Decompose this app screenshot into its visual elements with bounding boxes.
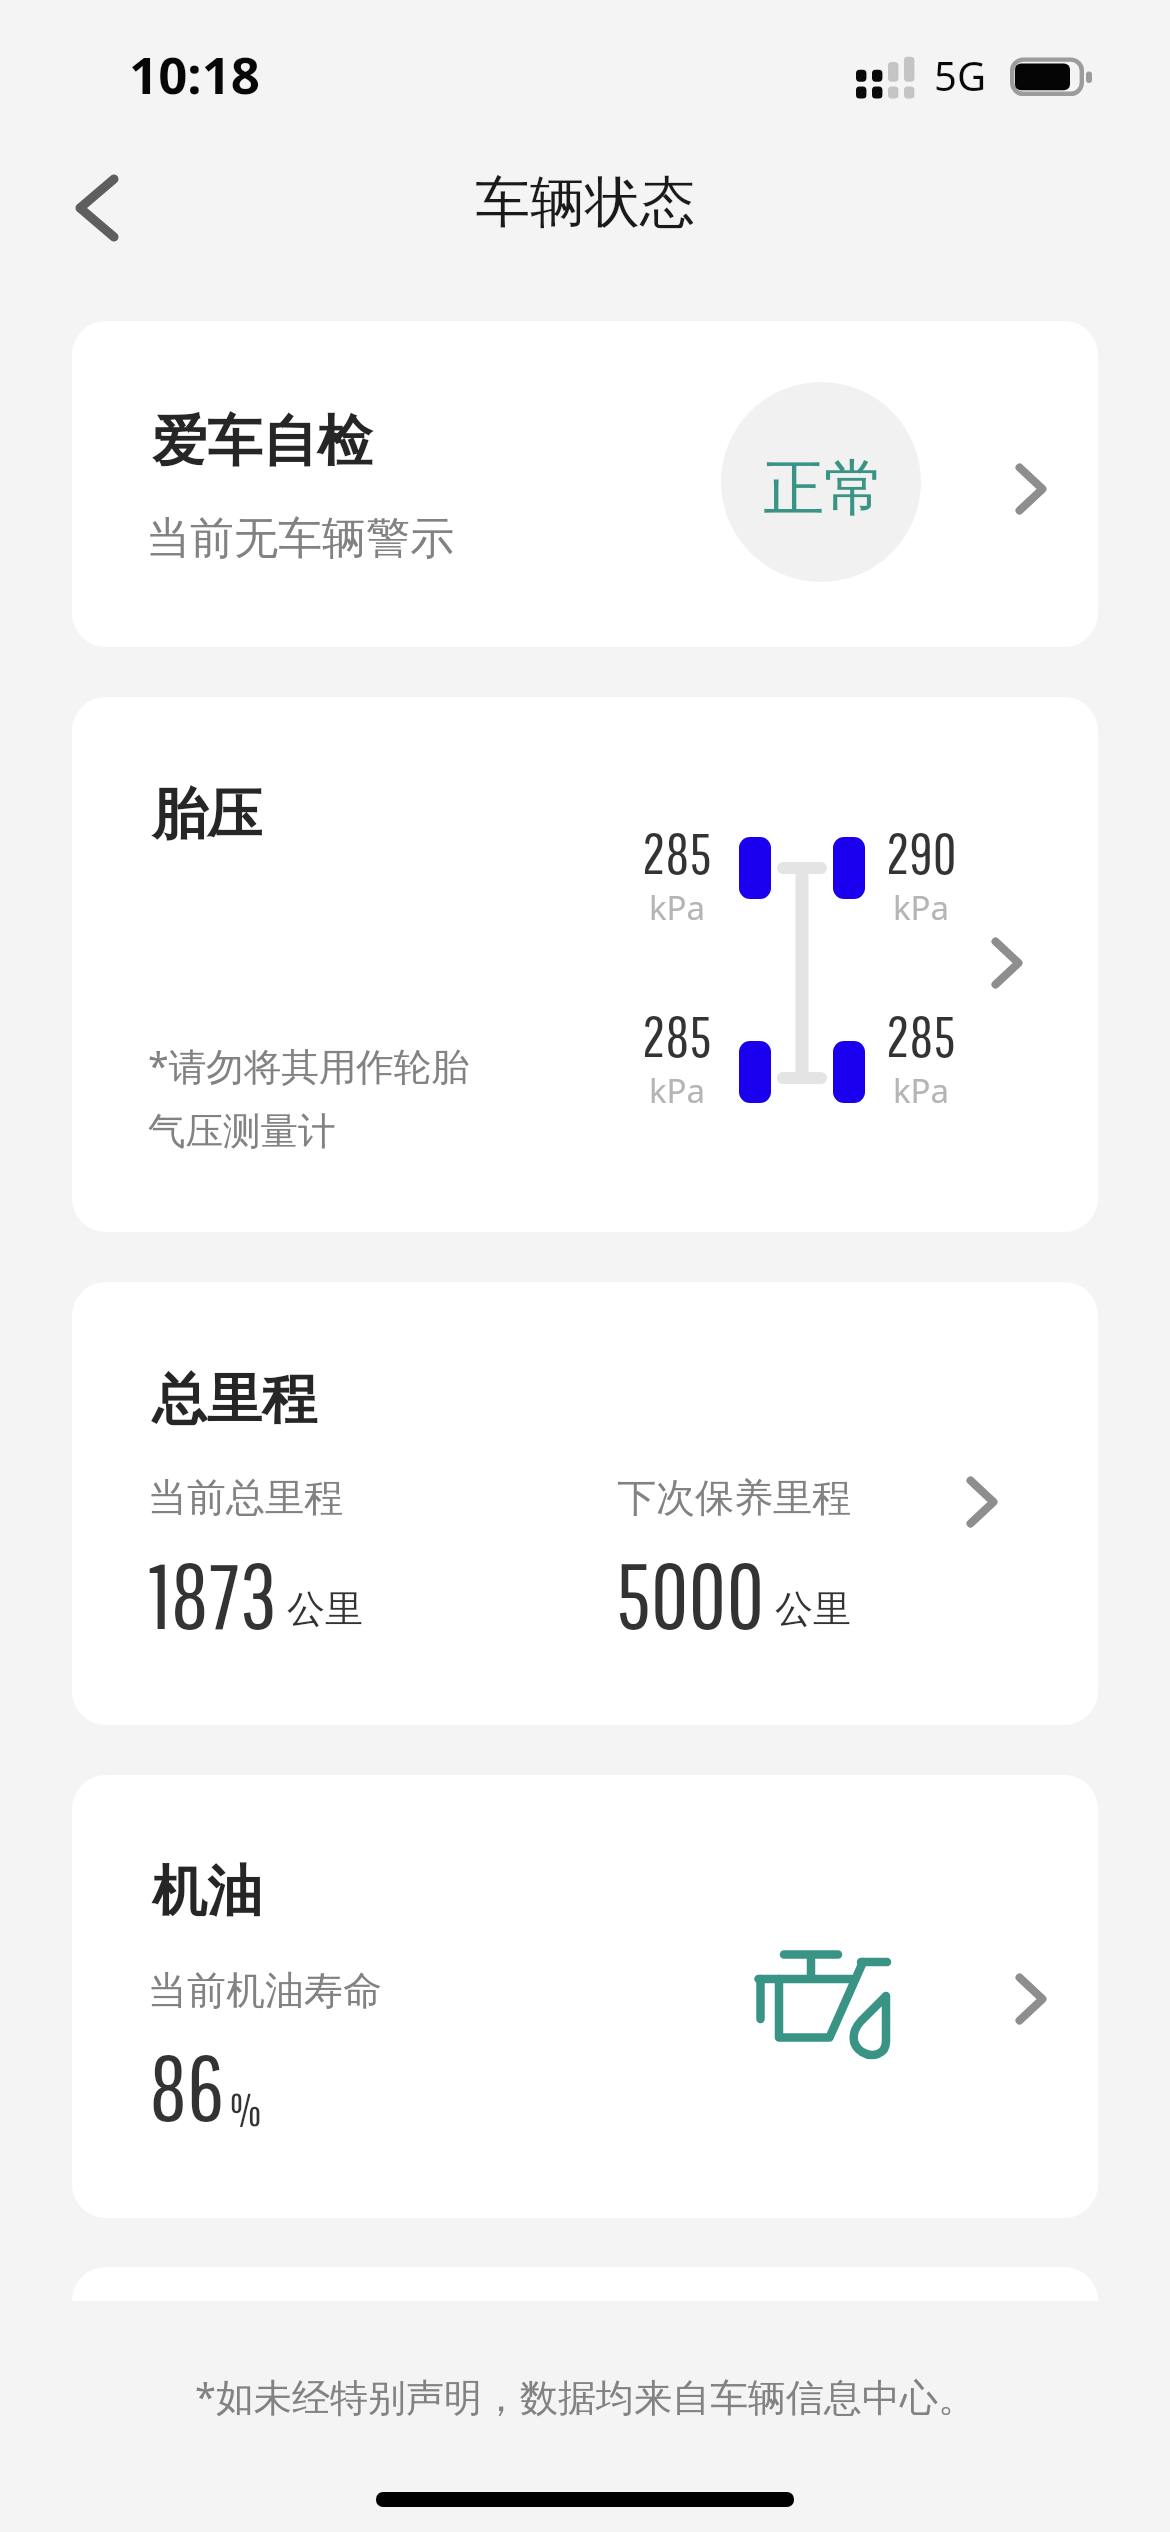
button[interactable]: 机油 <box>72 1775 1098 2218</box>
button[interactable]: 总里程 <box>72 1282 1098 1725</box>
staticText: kPa <box>893 1068 950 1113</box>
staticText: 290 <box>886 819 957 886</box>
other: Battery <box>1010 56 1094 100</box>
staticText: 总里程 <box>152 1365 317 1434</box>
staticText: kPa <box>649 885 706 930</box>
staticText: 机油 <box>152 1857 262 1926</box>
staticText: 285 <box>642 1002 712 1069</box>
staticText: % <box>230 2083 262 2135</box>
staticText: 86 <box>149 2033 225 2139</box>
staticText: kPa <box>893 885 950 930</box>
staticText: 10:18 <box>129 39 261 108</box>
staticText: 当前总里程 <box>148 1473 343 1522</box>
staticText: 5G <box>934 48 986 102</box>
staticText: 车辆状态 <box>475 168 695 237</box>
staticText: 当前无车辆警示 <box>146 511 454 566</box>
staticText: 胎压 <box>152 780 262 849</box>
staticText: 当前机油寿命 <box>148 1966 382 2015</box>
staticText: 285 <box>886 1002 956 1069</box>
staticText: *请勿将其用作轮胎 气压测量计 <box>148 1040 469 1155</box>
staticText: 1873 <box>149 1541 278 1647</box>
staticText: 5000 <box>616 1541 765 1647</box>
staticText: 爱车自检 <box>152 407 372 476</box>
other: Oil life <box>750 1945 895 2060</box>
button[interactable]: 胎压 <box>72 697 1098 1232</box>
staticText: 公里 <box>287 1585 363 1633</box>
staticText: 正常 <box>763 450 885 527</box>
other: Cellular signal <box>856 55 916 101</box>
staticText: 285 <box>642 819 712 886</box>
button[interactable]: 爱车自检 <box>72 321 1098 647</box>
staticText: *如未经特别声明，数据均来自车辆信息中心。 <box>195 2370 976 2422</box>
staticText: 下次保养里程 <box>617 1473 851 1522</box>
button[interactable]: Back <box>42 153 152 263</box>
staticText: kPa <box>649 1068 706 1113</box>
staticText: 公里 <box>775 1585 851 1633</box>
